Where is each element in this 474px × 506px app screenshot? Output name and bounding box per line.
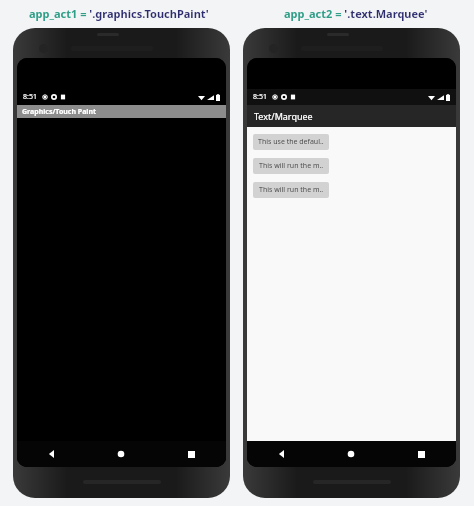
button[interactable]: Home	[86, 441, 156, 467]
staticText: app_act1 = '.graphics.TouchPaint'	[29, 6, 209, 21]
button[interactable]: This use the defaul..	[253, 134, 329, 150]
staticText: This will run the m..	[259, 185, 324, 195]
staticText: app_act2 = '.text.Marquee'	[284, 6, 428, 21]
staticText: Text/Marquee	[254, 110, 313, 122]
button[interactable]: Recents	[156, 441, 226, 467]
button[interactable]: Home	[316, 441, 386, 467]
button[interactable]: Recents	[386, 441, 456, 467]
button[interactable]: Back	[17, 441, 86, 467]
staticText: 8:51	[253, 92, 267, 102]
button[interactable]: This will run the m..	[253, 158, 329, 174]
button[interactable]: Text/Marquee	[247, 105, 456, 127]
staticText: Graphics/Touch Paint	[22, 107, 97, 117]
button[interactable]: Back	[247, 441, 316, 467]
button[interactable]: This will run the m..	[253, 182, 329, 198]
button[interactable]: Graphics/Touch Paint	[17, 105, 226, 118]
staticText: 8:51	[23, 92, 37, 102]
staticText: This will run the m..	[259, 161, 324, 171]
staticText: This use the defaul..	[258, 137, 324, 147]
